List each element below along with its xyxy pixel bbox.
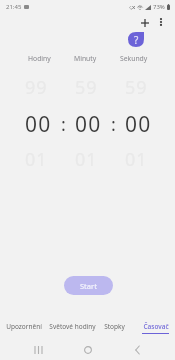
button[interactable]: Minutes picker bbox=[64, 72, 112, 172]
button[interactable]: Světové hodiny bbox=[47, 318, 97, 338]
staticText: 73% bbox=[153, 3, 165, 11]
button[interactable]: Hours picker bbox=[14, 72, 62, 172]
staticText: Stopky bbox=[104, 322, 125, 331]
button[interactable]: Stopky bbox=[97, 318, 131, 338]
staticText: 59 bbox=[125, 75, 148, 99]
staticText: : bbox=[61, 112, 66, 137]
staticText: Upozornění bbox=[6, 322, 42, 331]
button[interactable]: Home bbox=[78, 340, 98, 360]
staticText: 99 bbox=[25, 75, 48, 99]
staticText: 21:45 bbox=[6, 3, 22, 11]
button[interactable]: Add timer preset bbox=[135, 13, 155, 33]
staticText: : bbox=[111, 112, 116, 137]
staticText: ? bbox=[134, 33, 139, 47]
button[interactable]: Časovač bbox=[136, 318, 174, 338]
button[interactable]: Seconds picker bbox=[114, 72, 162, 172]
staticText: Minuty bbox=[74, 54, 97, 63]
button[interactable]: Start bbox=[64, 276, 113, 295]
staticText: Sekundy bbox=[120, 54, 148, 63]
staticText: Hodiny bbox=[28, 54, 51, 63]
staticText: 00 bbox=[125, 110, 152, 138]
button[interactable]: Back bbox=[127, 340, 147, 360]
staticText: 00 bbox=[25, 110, 52, 138]
button[interactable]: More options bbox=[151, 12, 171, 32]
staticText: 00 bbox=[75, 110, 102, 138]
button[interactable]: Help bbox=[128, 32, 144, 47]
staticText: Světové hodiny bbox=[49, 322, 96, 331]
staticText: Časovač bbox=[143, 322, 169, 331]
staticText: 59 bbox=[75, 75, 98, 99]
staticText: Start bbox=[80, 281, 97, 291]
button[interactable]: Upozornění bbox=[1, 318, 47, 338]
button[interactable]: Recent apps bbox=[28, 340, 48, 360]
